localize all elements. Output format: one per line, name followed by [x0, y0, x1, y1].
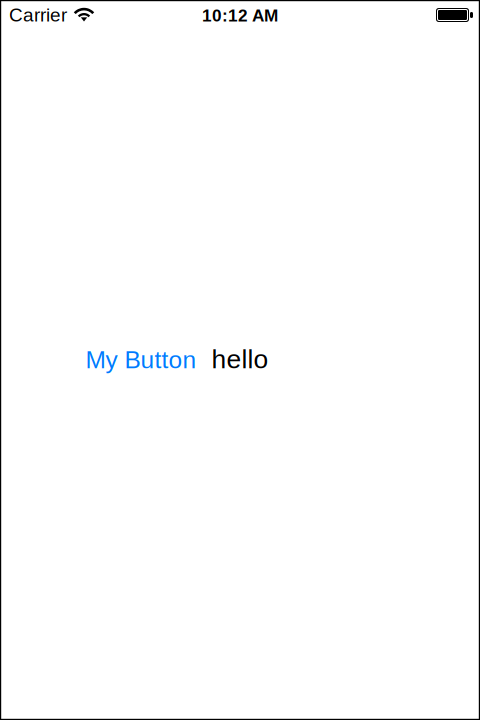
staticText: Carrier [9, 4, 67, 26]
button[interactable]: My Button [85, 346, 196, 373]
staticText: 10:12 AM [202, 6, 278, 25]
staticText: hello [211, 344, 268, 374]
staticText: My Button [85, 346, 196, 373]
